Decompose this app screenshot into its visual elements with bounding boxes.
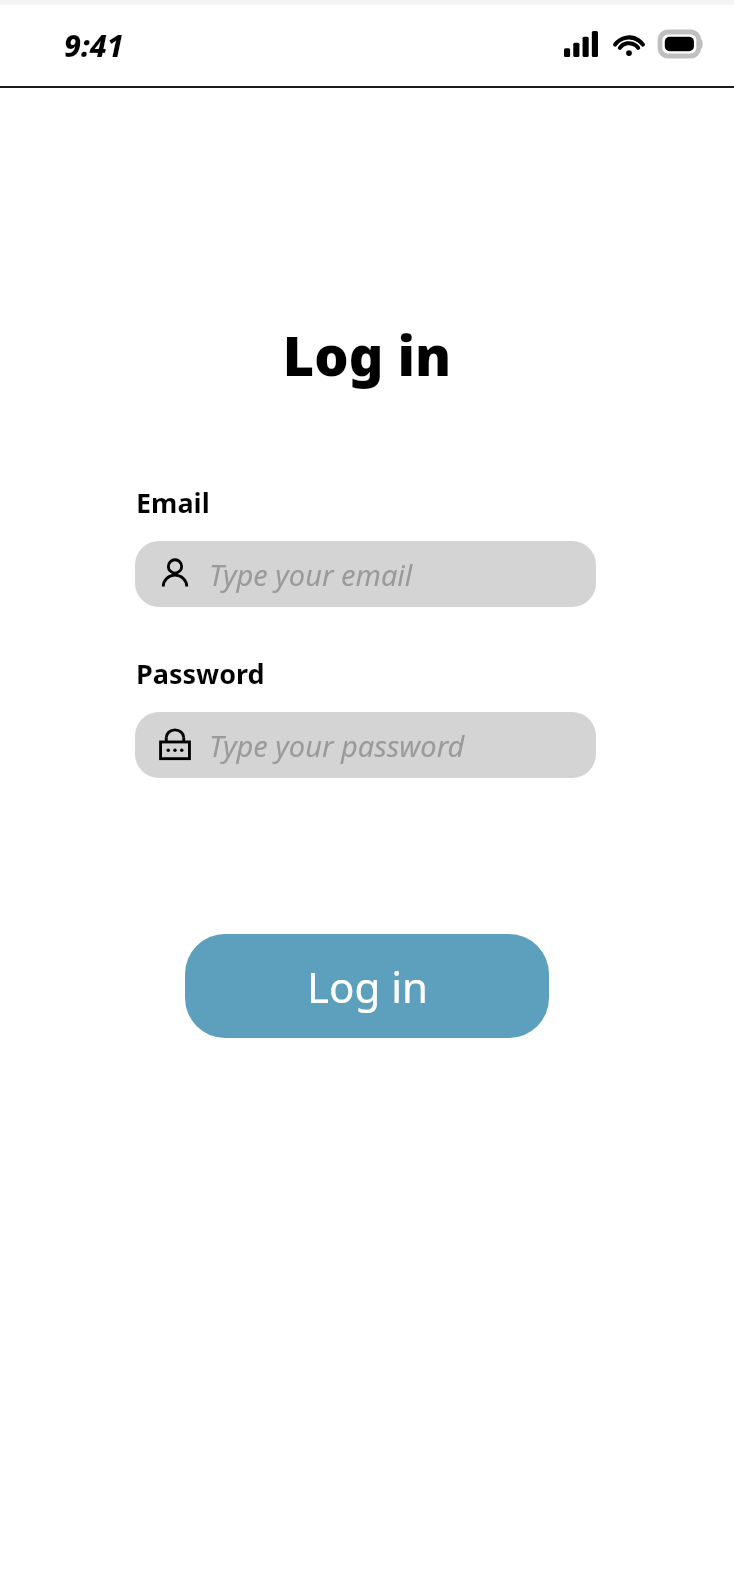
staticText: Log in xyxy=(307,958,428,1015)
button[interactable]: Email xyxy=(135,541,596,607)
staticText: 9:41 xyxy=(64,25,124,66)
button[interactable]: Password xyxy=(135,712,596,778)
staticText: Email xyxy=(136,484,210,521)
staticText: Type your email xyxy=(209,555,413,594)
staticText: Type your password xyxy=(209,726,465,765)
staticText: Password xyxy=(136,655,265,692)
button[interactable]: Log in xyxy=(185,934,549,1038)
staticText: Log in xyxy=(0,318,734,392)
